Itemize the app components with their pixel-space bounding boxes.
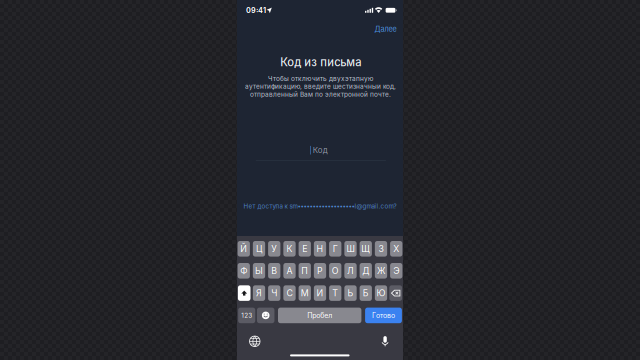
button[interactable]: П	[299, 263, 311, 279]
staticText: Х	[393, 243, 399, 254]
staticText: Ф	[240, 265, 247, 276]
button[interactable]: Ж	[375, 263, 387, 279]
staticText: Н	[316, 243, 323, 254]
staticText: Б	[363, 288, 369, 298]
staticText: О	[332, 265, 339, 276]
staticText: К	[286, 243, 292, 254]
button[interactable]: 123	[238, 308, 255, 323]
staticText: Ж	[377, 265, 385, 276]
button[interactable]: Ч	[268, 285, 280, 301]
button[interactable]: Далее	[360, 22, 396, 36]
button[interactable]: К	[283, 241, 296, 257]
staticText: С	[286, 288, 292, 298]
staticText: Код	[313, 145, 328, 155]
button[interactable]: В	[268, 263, 280, 279]
button[interactable]: Т	[329, 285, 341, 301]
staticText: З	[378, 243, 383, 254]
button[interactable]: Й	[238, 241, 250, 257]
button[interactable]: Я	[253, 285, 265, 301]
button[interactable]: Н	[314, 241, 326, 257]
staticText: У	[271, 243, 277, 254]
button[interactable]: Р	[314, 263, 326, 279]
staticText: А	[286, 265, 292, 276]
button[interactable]: Emoji	[257, 308, 274, 323]
staticText: П	[301, 265, 308, 276]
staticText: Д	[362, 265, 369, 276]
staticText: М	[301, 288, 309, 298]
staticText: Р	[317, 265, 323, 276]
button[interactable]: У	[268, 241, 280, 257]
button[interactable]: Готово	[365, 308, 402, 323]
staticText: Пробел	[307, 311, 332, 320]
staticText: 123	[241, 311, 252, 319]
button[interactable]: Ф	[238, 263, 250, 279]
staticText: Э	[393, 265, 399, 276]
staticText: Чтобы отключить двухэтапную аутентификац…	[245, 75, 396, 98]
staticText: Далее	[374, 25, 396, 34]
button[interactable]: Ш	[344, 241, 357, 257]
button[interactable]: О	[329, 263, 341, 279]
button[interactable]: А	[283, 263, 296, 279]
button[interactable]: Shift	[238, 285, 250, 301]
button[interactable]: М	[299, 285, 311, 301]
staticText: Е	[302, 243, 307, 254]
staticText: Ц	[256, 243, 262, 254]
staticText: Я	[256, 288, 262, 298]
button[interactable]: Д	[360, 263, 372, 279]
staticText: Ю	[376, 288, 385, 298]
staticText: Готово	[372, 311, 395, 320]
button[interactable]: Э	[390, 263, 402, 279]
button[interactable]: Пробел	[278, 308, 361, 323]
button[interactable]: Delete	[389, 285, 402, 301]
button[interactable]: Б	[360, 285, 372, 301]
staticText: Ш	[346, 243, 354, 254]
button[interactable]: Ю	[375, 285, 387, 301]
button[interactable]: Х	[390, 241, 402, 257]
staticText: В	[271, 265, 277, 276]
button[interactable]: Щ	[360, 241, 372, 257]
staticText: Код из письма	[280, 55, 361, 69]
staticText: Ь	[347, 288, 353, 298]
button[interactable]: Ц	[253, 241, 265, 257]
staticText: Г	[333, 243, 338, 254]
button[interactable]: Л	[344, 263, 357, 279]
staticText: Ч	[271, 288, 277, 298]
staticText: Й	[240, 243, 247, 254]
button[interactable]: З	[375, 241, 387, 257]
staticText: Нет доступа к sm•••••••••••••••••••l@gma…	[243, 202, 396, 210]
staticText: И	[316, 288, 323, 298]
button[interactable]: Нет доступа к sm•••••••••••••••••••l@gma…	[240, 201, 400, 211]
staticText: Т	[332, 288, 338, 298]
staticText: 09:41	[246, 6, 266, 15]
button[interactable]: Г	[329, 241, 341, 257]
button[interactable]: Ы	[253, 263, 265, 279]
staticText: Л	[347, 265, 354, 276]
staticText: Ы	[255, 265, 263, 276]
staticText: Щ	[361, 243, 370, 254]
button[interactable]: С	[283, 285, 296, 301]
button[interactable]: Е	[299, 241, 311, 257]
button[interactable]: И	[314, 285, 326, 301]
button[interactable]: Next keyboard	[248, 334, 262, 348]
button[interactable]: Ь	[344, 285, 357, 301]
button[interactable]: Dictation	[380, 335, 391, 348]
